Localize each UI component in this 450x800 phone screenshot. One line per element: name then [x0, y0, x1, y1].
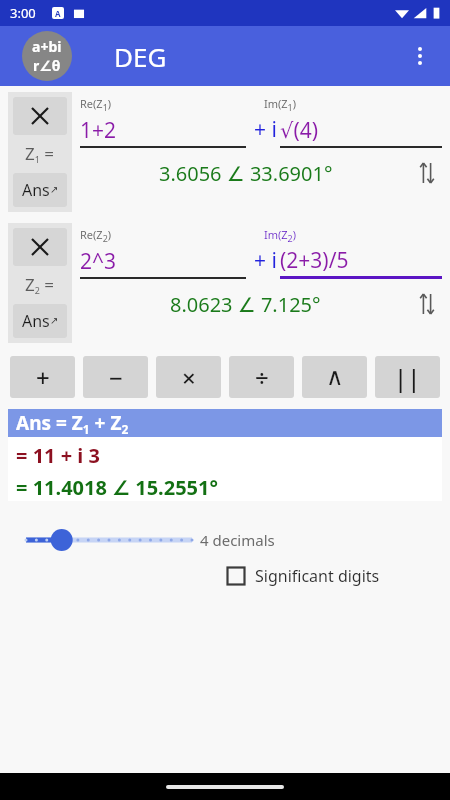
- staticText: (2+3)/5: [280, 246, 349, 275]
- staticText: + i: [254, 115, 277, 144]
- button[interactable]: Significant digits: [226, 565, 380, 587]
- button[interactable]: Swap form: [412, 289, 442, 319]
- staticText: ∧: [326, 363, 344, 391]
- staticText: −: [109, 361, 123, 394]
- staticText: a+bi: [32, 37, 62, 56]
- staticText: Ans: [22, 310, 50, 332]
- staticText: Re(Z2): [80, 227, 112, 244]
- staticText: Z2 =: [25, 273, 55, 297]
- staticText: 1+2: [80, 116, 117, 145]
- staticText: 3.6056 ∠ 33.6901°: [159, 160, 333, 187]
- staticText: 8.0623 ∠ 7.125°: [170, 291, 321, 318]
- button[interactable]: √(4): [280, 116, 442, 148]
- staticText: Im(Z2): [264, 227, 297, 244]
- staticText: ||: [394, 361, 421, 394]
- staticText: ↗: [50, 315, 59, 327]
- button[interactable]: More options: [398, 34, 442, 78]
- button[interactable]: Clear Z1: [13, 97, 67, 135]
- staticText: √(4): [280, 116, 318, 145]
- button[interactable]: Swap form: [412, 158, 442, 188]
- staticText: = 11.4018 ∠ 15.2551°: [16, 474, 218, 501]
- staticText: r∠θ: [33, 56, 61, 75]
- button[interactable]: Ans = Z1 + Z2: [8, 409, 442, 437]
- staticText: 3:00: [10, 4, 36, 22]
- button[interactable]: Clear Z2: [13, 228, 67, 266]
- button[interactable]: (2+3)/5: [280, 246, 442, 279]
- button[interactable]: Ans: [13, 173, 67, 207]
- button[interactable]: Ans: [13, 304, 67, 338]
- staticText: ÷: [255, 361, 269, 394]
- staticText: Significant digits: [255, 565, 380, 587]
- staticText: Ans: [22, 179, 50, 201]
- staticText: A: [55, 8, 61, 19]
- staticText: Re(Z1): [80, 96, 112, 113]
- staticText: Im(Z1): [264, 96, 297, 113]
- button[interactable]: −: [83, 356, 148, 398]
- button[interactable]: Toggle notation: [22, 31, 72, 81]
- staticText: = 11 + i 3: [16, 442, 100, 469]
- staticText: Ans = Z1 + Z2: [16, 410, 129, 437]
- button[interactable]: ||: [375, 356, 440, 398]
- button[interactable]: Decimal places slider: [22, 523, 200, 557]
- button[interactable]: +: [10, 356, 75, 398]
- button[interactable]: 1+2: [80, 116, 254, 148]
- button[interactable]: ∧: [302, 356, 367, 398]
- staticText: ↗: [50, 184, 59, 196]
- staticText: ×: [182, 361, 196, 394]
- staticText: Z1 =: [25, 142, 55, 166]
- staticText: + i: [254, 246, 277, 275]
- staticText: +: [36, 361, 50, 394]
- staticText: DEG: [114, 39, 167, 74]
- button[interactable]: 2^3: [80, 247, 254, 279]
- button[interactable]: ÷: [229, 356, 294, 398]
- staticText: 4 decimals: [200, 530, 275, 550]
- button[interactable]: ×: [156, 356, 221, 398]
- staticText: 2^3: [80, 247, 117, 276]
